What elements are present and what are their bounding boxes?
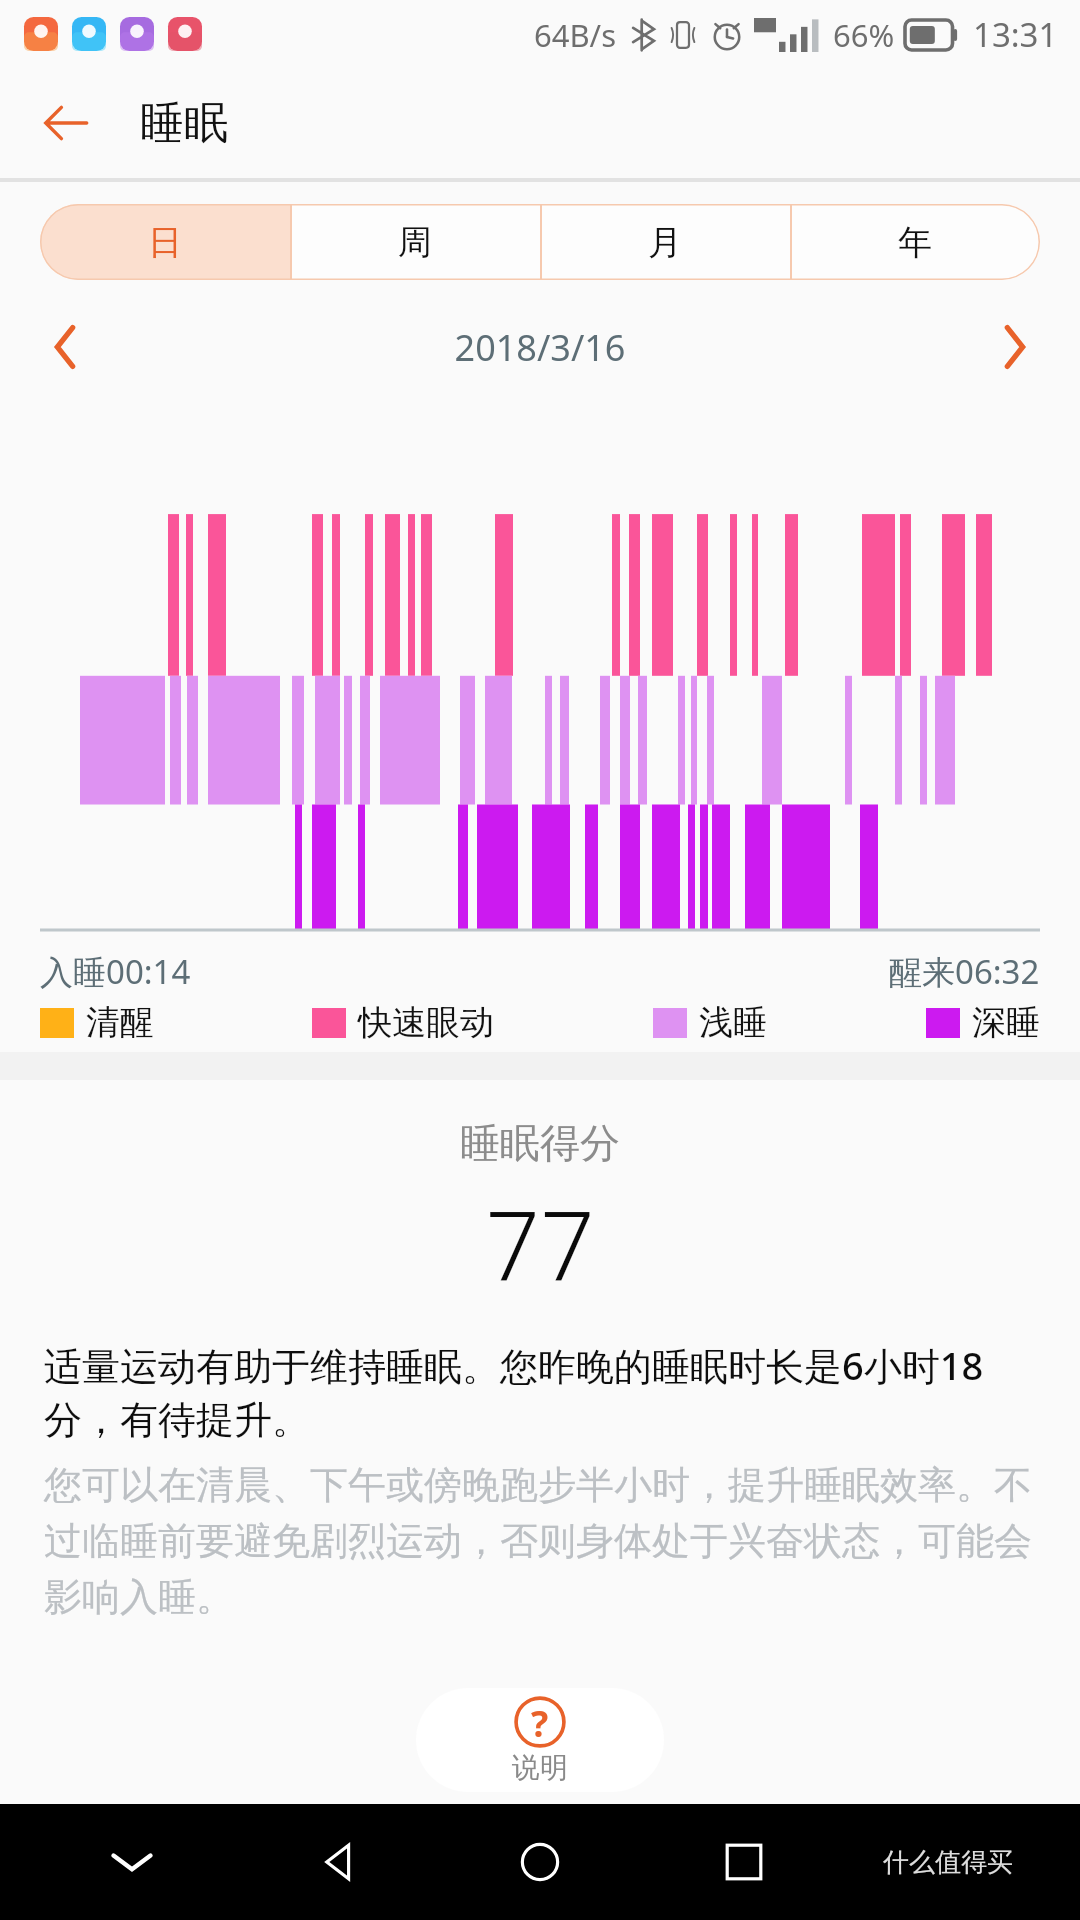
button[interactable]: Back (234, 1804, 438, 1920)
staticText: ? (531, 1699, 549, 1748)
staticText: 月 (648, 221, 682, 264)
button[interactable]: Previous day (30, 312, 100, 382)
staticText: 77 (0, 1178, 1080, 1309)
button[interactable]: Home (438, 1804, 642, 1920)
button[interactable]: 周 (290, 204, 540, 280)
staticText: 睡眠 (140, 96, 228, 151)
button[interactable]: 日 (40, 204, 290, 280)
staticText: 64B/s (534, 14, 616, 56)
staticText: 2018/3/16 (100, 323, 980, 372)
staticText: 睡眠得分 (0, 1118, 1080, 1168)
staticText: 13:31 (973, 12, 1058, 57)
staticText: 清醒 (86, 1001, 154, 1044)
button[interactable]: 年 (790, 204, 1040, 280)
staticText: 浅睡 (699, 1001, 767, 1044)
staticText: 66% (833, 14, 895, 56)
button[interactable]: Back (28, 85, 104, 161)
staticText: 深睡 (972, 1001, 1040, 1044)
staticText: 入睡00:14 (40, 949, 191, 994)
staticText: 日 (148, 221, 182, 264)
button[interactable]: Recents (642, 1804, 846, 1920)
button[interactable]: 说明 (416, 1688, 664, 1792)
staticText: 适量运动有助于维持睡眠。您昨晚的睡眠时长是6小时18分，有待提升。 (44, 1339, 1036, 1445)
staticText: 说明 (512, 1750, 568, 1785)
button[interactable]: 月 (540, 204, 790, 280)
staticText: 年 (898, 221, 932, 264)
staticText: 周 (398, 221, 432, 264)
staticText: 快速眼动 (358, 1001, 494, 1044)
staticText: 醒来06:32 (889, 949, 1040, 994)
button[interactable]: Hide keyboard (30, 1804, 234, 1920)
button[interactable]: Next day (980, 312, 1050, 382)
staticText: 什么值得买 (883, 1846, 1013, 1879)
staticText: 您可以在清晨、下午或傍晚跑步半小时，提升睡眠效率。不过临睡前要避免剧烈运动，否则… (44, 1461, 1036, 1621)
